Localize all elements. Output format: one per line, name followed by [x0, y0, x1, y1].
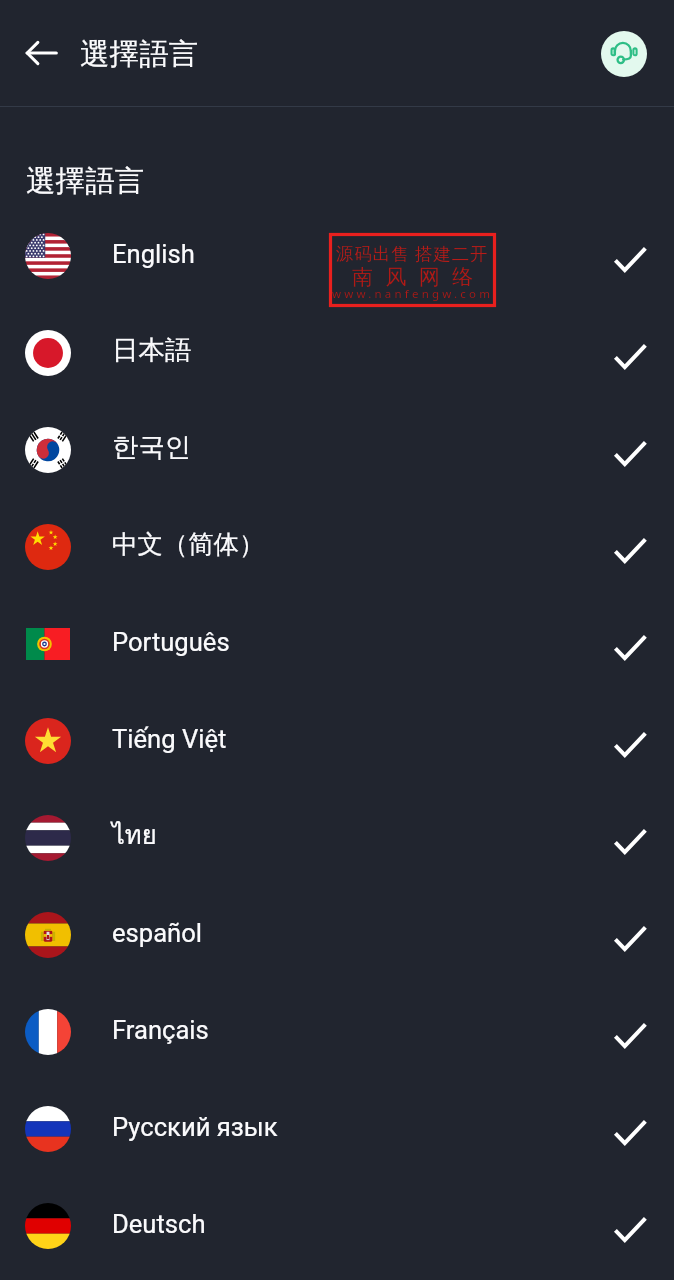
button[interactable]: Français: [0, 983, 674, 1080]
button[interactable]: Tiếng Việt: [0, 692, 674, 789]
staticText: www.nanfengw.com: [332, 286, 494, 302]
staticText: 南 风 网 络: [352, 262, 474, 291]
staticText: español: [112, 918, 203, 948]
staticText: Русский язык: [112, 1112, 278, 1142]
staticText: 日本語: [112, 334, 192, 367]
staticText: Français: [112, 1015, 209, 1045]
staticText: ไทย: [112, 815, 157, 856]
button[interactable]: English: [0, 207, 674, 304]
staticText: Português: [112, 627, 230, 657]
button[interactable]: Русский язык: [0, 1080, 674, 1177]
button[interactable]: Customer support: [601, 31, 647, 77]
staticText: Deutsch: [112, 1209, 206, 1239]
button[interactable]: 日本語: [0, 304, 674, 401]
staticText: English: [112, 239, 195, 269]
staticText: 한국인: [112, 431, 192, 464]
button[interactable]: 中文（简体）: [0, 498, 674, 595]
staticText: 選擇語言: [26, 162, 145, 199]
staticText: 選擇語言: [80, 35, 199, 72]
button[interactable]: español: [0, 886, 674, 983]
button[interactable]: ไทย: [0, 789, 674, 886]
button[interactable]: Back: [15, 27, 67, 79]
staticText: 源码出售 搭建二开: [336, 241, 489, 265]
staticText: 中文（简体）: [112, 529, 265, 561]
button[interactable]: Deutsch: [0, 1177, 674, 1274]
button[interactable]: 한국인: [0, 401, 674, 498]
staticText: Tiếng Việt: [112, 724, 227, 754]
button[interactable]: Português: [0, 595, 674, 692]
